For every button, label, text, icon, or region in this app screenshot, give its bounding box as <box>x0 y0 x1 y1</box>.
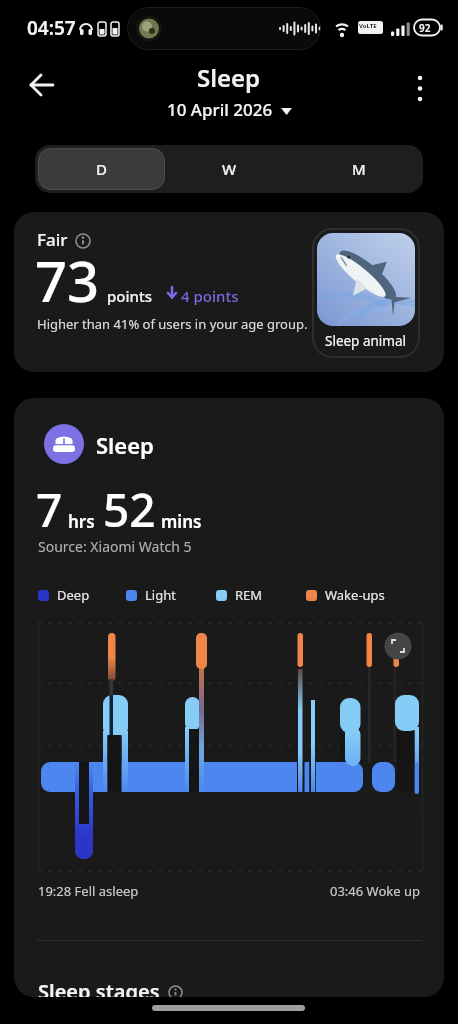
button[interactable]: Sleep animal <box>312 228 420 358</box>
button[interactable] <box>412 74 428 104</box>
staticText: VoLTE <box>359 22 377 30</box>
staticText: 03:46 Woke up <box>330 882 420 900</box>
staticText: Sleep <box>197 61 261 94</box>
staticText: mins <box>161 510 202 533</box>
button[interactable]: M <box>294 145 423 193</box>
button[interactable]: D <box>38 148 165 190</box>
staticText: REM <box>235 586 263 604</box>
staticText: W <box>222 159 237 179</box>
button[interactable]: 10 April 2026 <box>167 98 292 121</box>
staticText: Sleep stages <box>38 978 160 997</box>
staticText: D <box>96 159 107 179</box>
staticText: Source: Xiaomi Watch 5 <box>38 537 192 556</box>
button[interactable]: Fair <box>14 212 444 372</box>
staticText: points <box>107 286 152 306</box>
staticText: 4 points <box>181 286 239 306</box>
staticText: 52 <box>103 478 156 541</box>
staticText: 92 <box>419 21 431 35</box>
button[interactable] <box>28 72 56 98</box>
staticText: 73 <box>35 242 100 318</box>
staticText: Deep <box>57 586 90 604</box>
staticText: Sleep animal <box>325 332 407 350</box>
staticText: Sleep <box>96 430 154 460</box>
staticText: Wake-ups <box>325 586 385 604</box>
staticText: hrs <box>68 510 95 533</box>
staticText: 19:28 Fell asleep <box>38 882 139 900</box>
staticText: M <box>352 159 366 179</box>
staticText: Higher than 41% of users in your age gro… <box>37 315 308 333</box>
staticText: 04:57 <box>27 15 76 41</box>
staticText: 10 April 2026 <box>167 98 273 121</box>
staticText: 7 <box>36 478 63 541</box>
button[interactable]: W <box>165 145 294 193</box>
staticText: Fair <box>37 228 68 251</box>
staticText: Light <box>145 586 176 604</box>
